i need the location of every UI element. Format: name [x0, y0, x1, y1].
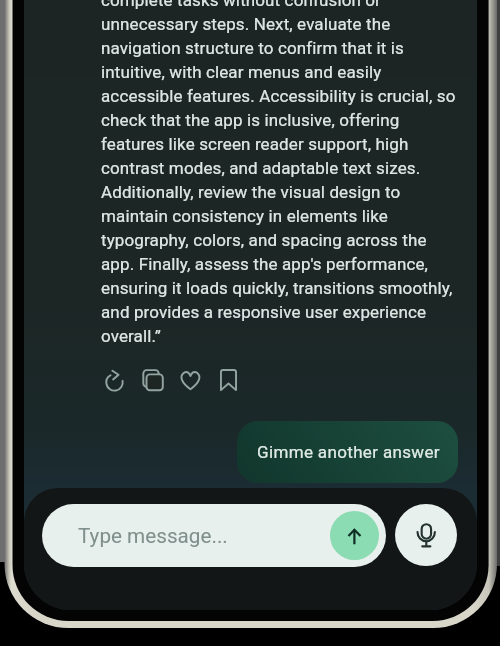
button[interactable]: Regenerate: [97, 361, 134, 398]
staticText: Type message...: [78, 524, 228, 548]
staticText: complete tasks without confusion or unne…: [101, 0, 458, 346]
staticText: Gimme another answer: [257, 442, 440, 462]
button[interactable]: Send: [330, 511, 379, 560]
button[interactable]: Voice input: [395, 504, 457, 566]
button[interactable]: Like: [171, 361, 208, 398]
button[interactable]: Copy: [134, 361, 171, 398]
button[interactable]: Type message...: [42, 504, 386, 567]
button[interactable]: Gimme another answer: [237, 421, 458, 483]
button[interactable]: Save: [208, 361, 245, 398]
